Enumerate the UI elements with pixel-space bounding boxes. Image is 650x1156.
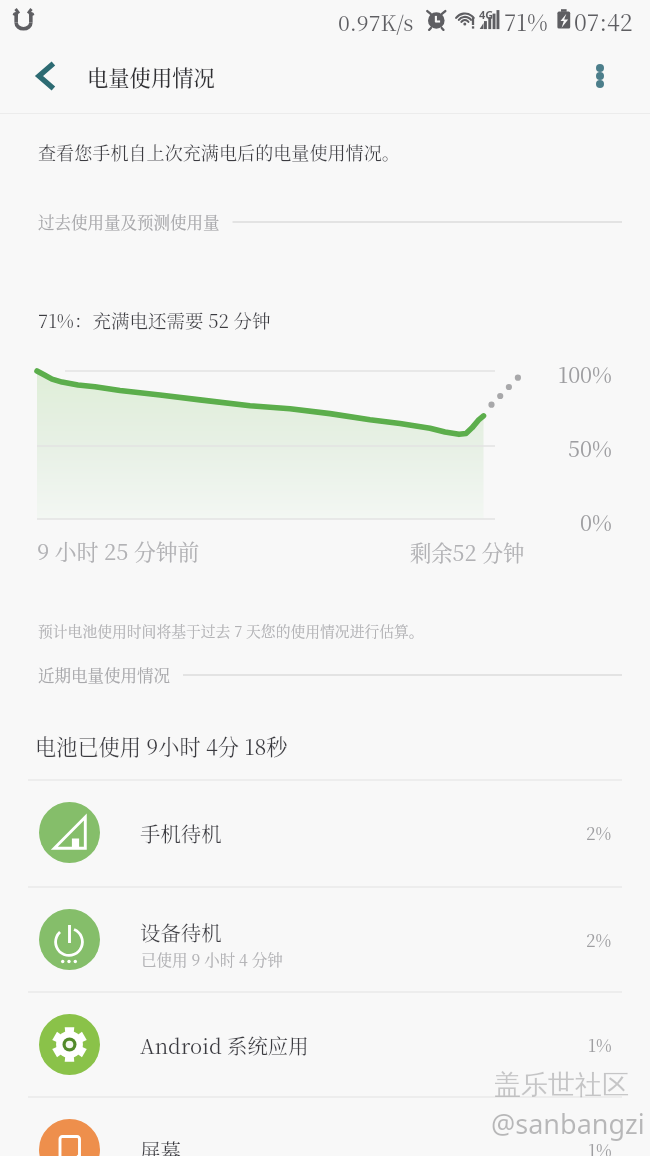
button[interactable]: 手机待机 [0, 779, 650, 884]
staticText: 电池已使用 9小时 4分 18秒 [35, 731, 288, 761]
staticText: 盖乐世社区 [494, 1068, 629, 1102]
staticText: 预计电池使用时间将基于过去 7 天您的使用情况进行估算。 [38, 620, 424, 641]
staticText: 2% [586, 820, 612, 844]
staticText: 设备待机 [140, 918, 222, 947]
staticText: 9 小时 25 分钟前 [37, 535, 200, 566]
staticText: Android 系统应用 [140, 1031, 309, 1060]
staticText: 71%：充满电还需要 52 分钟 [38, 307, 271, 334]
staticText: 50% [568, 432, 612, 463]
button[interactable]: 屏幕 [0, 1096, 650, 1156]
button[interactable]: Android 系统应用 [0, 991, 650, 1096]
staticText: 近期电量使用情况 [38, 663, 170, 687]
staticText: 屏幕 [140, 1136, 181, 1156]
staticText: 1% [588, 1137, 612, 1156]
staticText: 已使用 9 小时 4 分钟 [141, 948, 283, 970]
staticText: 07:42 [574, 5, 633, 38]
staticText: 电量使用情况 [87, 61, 215, 92]
staticText: 0% [580, 506, 612, 537]
button[interactable]: Back [17, 46, 77, 106]
staticText: 1% [588, 1032, 612, 1056]
staticText: 71% [504, 5, 548, 37]
staticText: 0.97K/s [338, 6, 414, 37]
staticText: 过去使用量及预测使用量 [38, 210, 220, 234]
button[interactable]: 设备待机 [0, 886, 650, 991]
button[interactable]: More options [570, 46, 630, 106]
staticText: 查看您手机自上次充满电后的电量使用情况。 [38, 139, 400, 165]
staticText: 100% [558, 358, 612, 389]
staticText: 4G [479, 7, 494, 22]
staticText: 剩余52 分钟 [410, 536, 525, 567]
staticText: 2% [586, 927, 612, 951]
staticText: 手机待机 [140, 819, 222, 848]
staticText: @sanbangzi [491, 1105, 645, 1142]
